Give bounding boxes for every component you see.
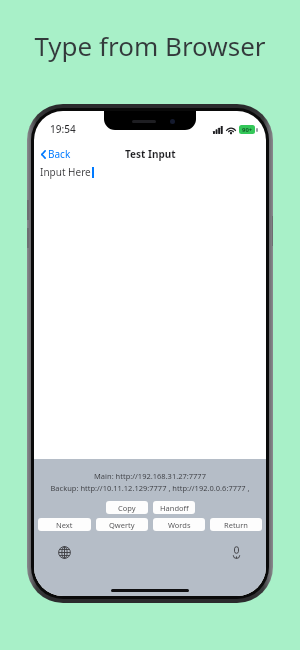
button[interactable]: Switch keyboard language (54, 542, 74, 562)
staticText: Return (224, 520, 248, 530)
button[interactable]: Next (38, 518, 91, 531)
staticText: Back (48, 147, 71, 161)
button[interactable]: Back (39, 145, 73, 163)
staticText: Main: http://192.168.31.27:7777 (34, 471, 266, 481)
staticText: Words (168, 520, 191, 530)
button[interactable]: Dictation (226, 542, 246, 562)
staticText: Next (56, 520, 73, 530)
button[interactable]: Words (153, 518, 205, 531)
staticText: 19:54 (50, 122, 76, 136)
staticText: Handoff (160, 503, 189, 513)
button[interactable]: Handoff (153, 501, 195, 514)
staticText: Test Input (125, 147, 176, 161)
button[interactable]: Qwerty (96, 518, 148, 531)
button[interactable]: Return (210, 518, 262, 531)
button[interactable]: Copy (106, 501, 148, 514)
staticText: Type from Browser (34, 28, 266, 63)
staticText: Copy (118, 503, 136, 513)
staticText: Qwerty (109, 520, 135, 530)
staticText: Input Here (40, 165, 91, 179)
staticText: Backup: http://10.11.12.129:7777 , http:… (38, 483, 262, 493)
staticText: 90+ (242, 126, 253, 134)
